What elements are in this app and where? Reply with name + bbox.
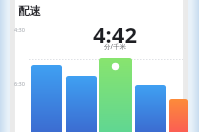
button[interactable]: Current pace 4:42 minutes per kilometer	[83, 19, 147, 54]
staticText: 分/千米	[104, 42, 126, 51]
button[interactable]: 配速	[0, 0, 199, 132]
staticText: 配速	[18, 4, 41, 18]
staticText: 6:30	[14, 80, 25, 87]
staticText: 4:42	[93, 19, 137, 49]
staticText: 4:30	[14, 26, 25, 33]
